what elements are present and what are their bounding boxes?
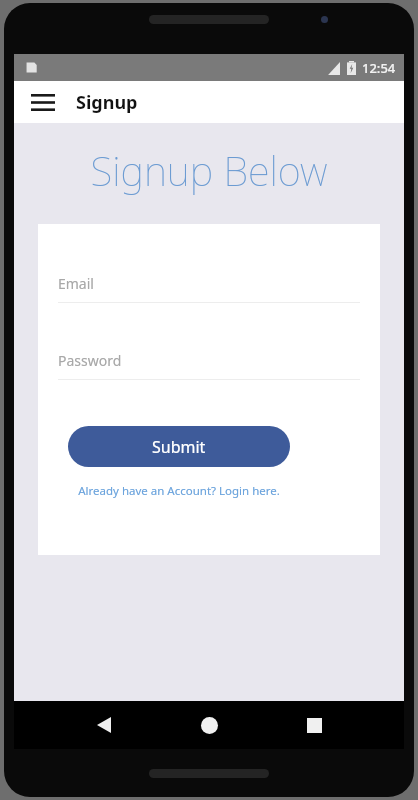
staticText: Signup Below — [14, 143, 404, 197]
staticText: Email — [58, 274, 94, 293]
button[interactable]: Recent apps — [294, 705, 334, 745]
staticText: Password — [58, 351, 122, 370]
staticText: Signup — [76, 90, 138, 115]
button[interactable]: Submit — [68, 426, 290, 467]
staticText: 12:54 — [362, 59, 396, 77]
button[interactable]: Home — [189, 705, 229, 745]
button[interactable]: Email — [58, 274, 360, 303]
button[interactable]: Password — [58, 351, 360, 380]
button[interactable]: Open navigation menu — [26, 85, 60, 119]
button[interactable]: Already have an Account? Login here. — [68, 480, 290, 502]
staticText: Already have an Account? Login here. — [78, 483, 280, 499]
button[interactable]: Back — [84, 705, 124, 745]
staticText: Submit — [152, 436, 206, 458]
